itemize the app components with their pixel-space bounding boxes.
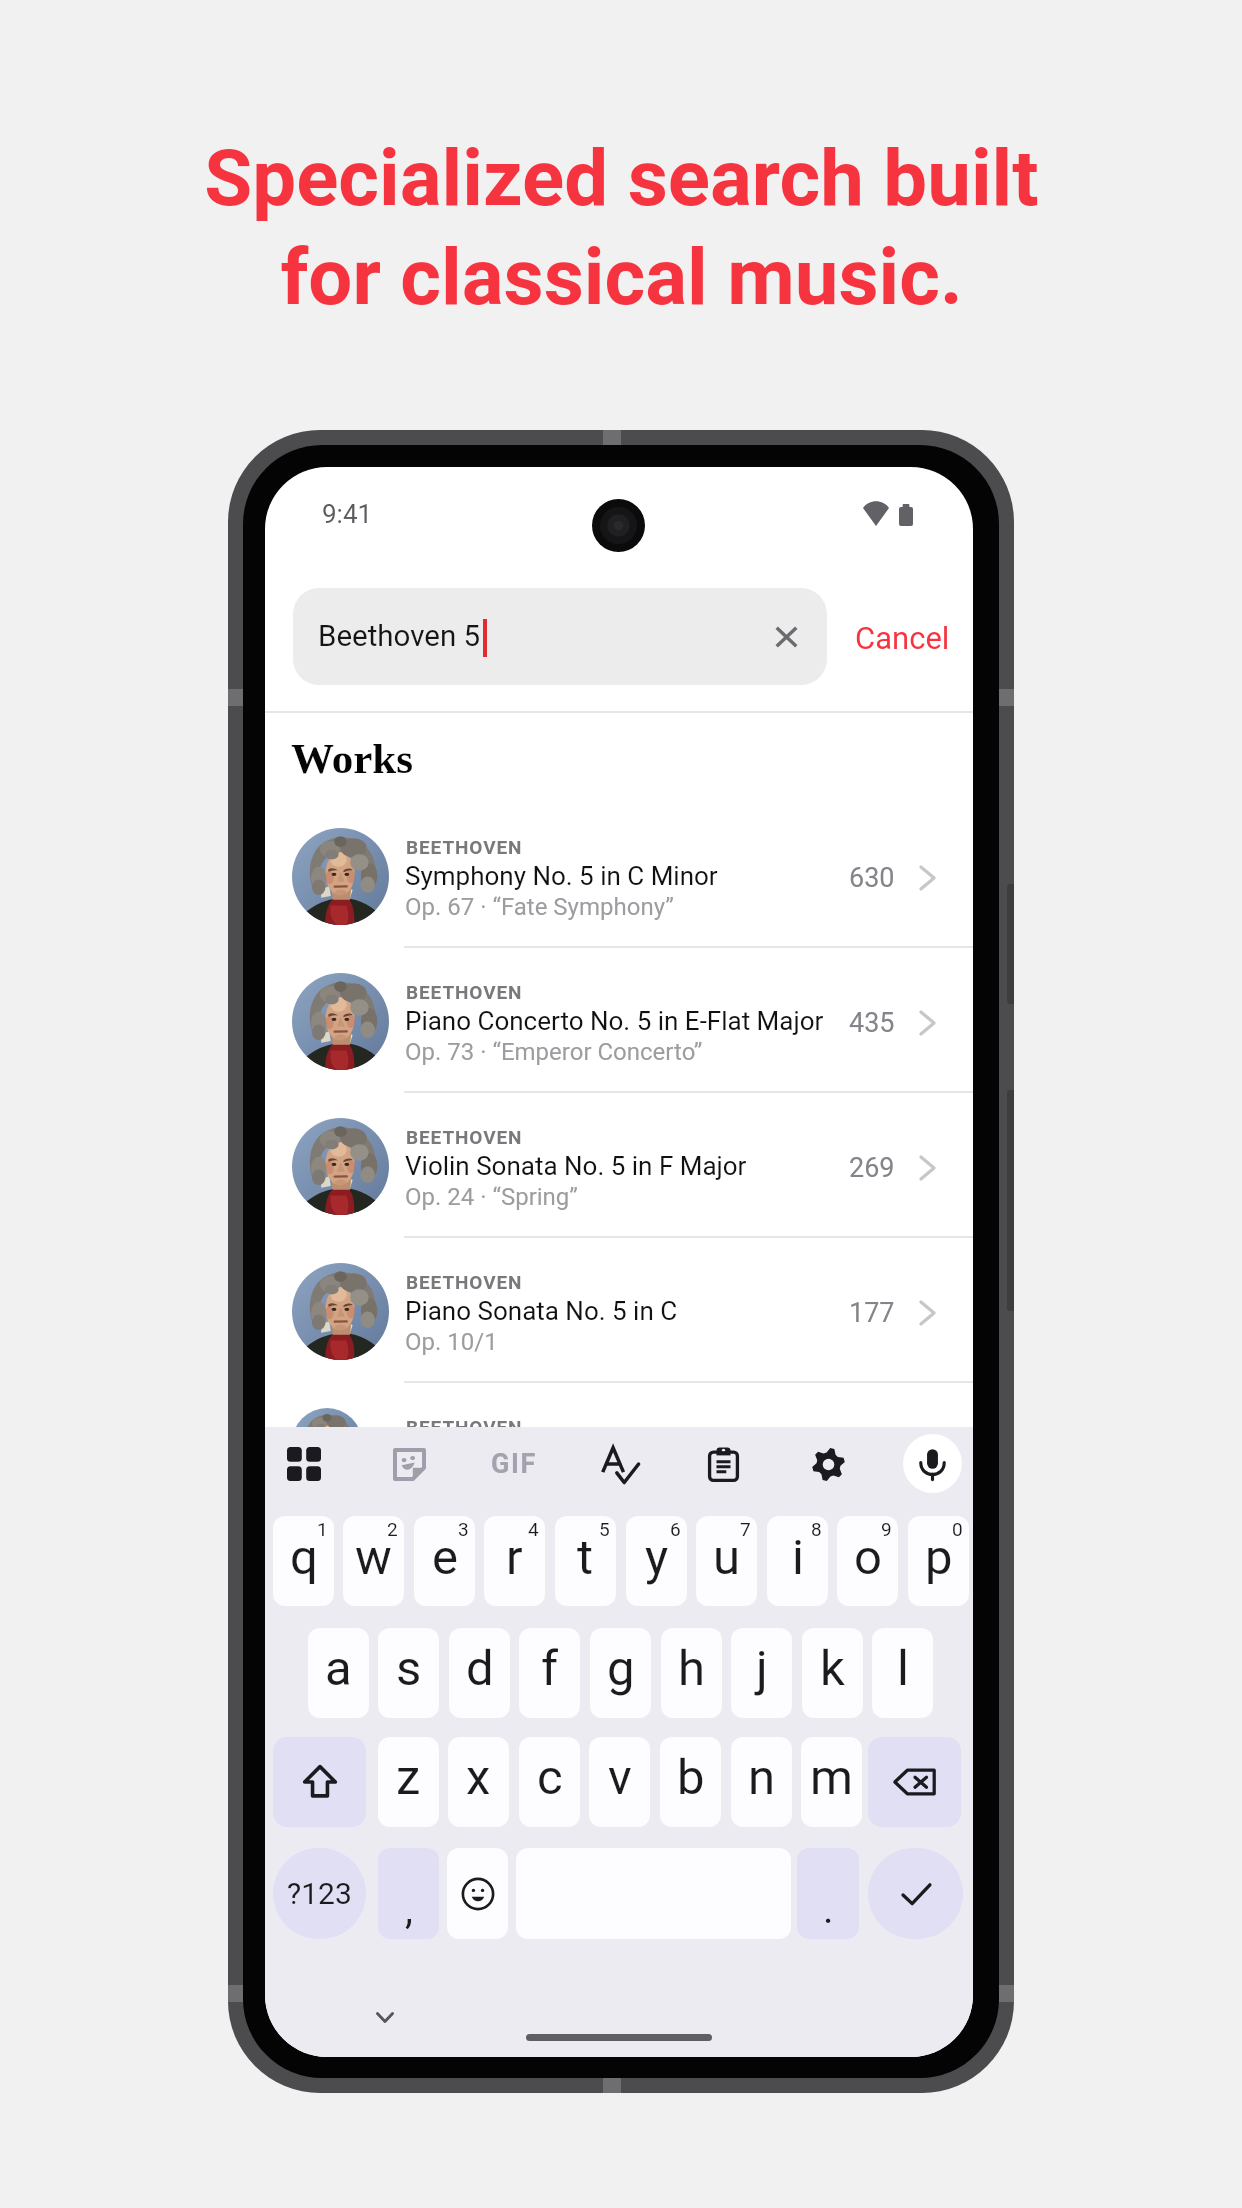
button[interactable]: BEETHOVEN	[265, 1093, 973, 1238]
button[interactable]: h	[661, 1628, 722, 1718]
button[interactable]: Cancel	[840, 589, 965, 686]
staticText: Op. 73 · “Emperor Concerto”	[405, 1038, 703, 1066]
button[interactable]: GIF	[479, 1440, 549, 1488]
button[interactable]: n	[731, 1737, 792, 1827]
button[interactable]: k	[802, 1628, 863, 1718]
button[interactable]: Shift	[273, 1737, 366, 1827]
button[interactable]: f	[519, 1628, 580, 1718]
button[interactable]: Text editing	[590, 1435, 650, 1495]
staticText: 7	[740, 1518, 751, 1540]
staticText: Symphony No. 5 in C Minor	[405, 861, 718, 891]
staticText: l	[897, 1640, 909, 1697]
button[interactable]: 6	[626, 1516, 687, 1606]
button[interactable]: j	[731, 1628, 792, 1718]
button[interactable]: b	[660, 1737, 721, 1827]
staticText: q	[290, 1529, 318, 1586]
staticText: Op. 67 · “Fate Symphony”	[405, 893, 674, 921]
staticText: Specialized search built for classical m…	[204, 133, 1039, 323]
button[interactable]: 3	[414, 1516, 475, 1606]
staticText: 269	[849, 1152, 895, 1184]
button[interactable]: ?123	[273, 1848, 366, 1939]
button[interactable]: Clipboard	[693, 1434, 753, 1494]
staticText: BEETHOVEN	[406, 1126, 523, 1148]
staticText: w	[355, 1529, 392, 1586]
staticText: p	[925, 1529, 953, 1586]
staticText: x	[466, 1749, 491, 1806]
button[interactable]: .	[797, 1848, 859, 1939]
button[interactable]: Emoji	[447, 1848, 508, 1939]
button[interactable]: m	[801, 1737, 862, 1827]
staticText: Works	[291, 735, 413, 783]
button[interactable]: x	[448, 1737, 509, 1827]
button[interactable]: 2	[343, 1516, 404, 1606]
staticText: ,	[405, 1886, 413, 1933]
button[interactable]: d	[449, 1628, 510, 1718]
button[interactable]: 8	[767, 1516, 828, 1606]
staticText: s	[396, 1640, 422, 1697]
staticText: z	[396, 1749, 421, 1806]
staticText: Piano Sonata No. 5 in C	[405, 1296, 678, 1326]
staticText: 630	[849, 862, 895, 894]
staticText: Op. 24 · “Spring”	[405, 1183, 578, 1211]
button[interactable]: BEETHOVEN	[265, 948, 973, 1093]
button[interactable]: 0	[908, 1516, 969, 1606]
button[interactable]: g	[590, 1628, 651, 1718]
staticText: t	[577, 1529, 594, 1586]
staticText: Op. 10/1	[405, 1328, 498, 1356]
staticText: n	[748, 1749, 776, 1806]
button[interactable]: ,	[378, 1848, 439, 1939]
button[interactable]: 5	[555, 1516, 616, 1606]
staticText: 2	[387, 1518, 398, 1540]
button[interactable]: BEETHOVEN	[265, 1238, 973, 1383]
button[interactable]: l	[872, 1628, 933, 1718]
staticText: d	[466, 1640, 494, 1697]
staticText: v	[608, 1749, 632, 1806]
staticText: u	[713, 1529, 741, 1586]
staticText: Cancel	[855, 620, 950, 656]
button[interactable]: v	[589, 1737, 650, 1827]
staticText: e	[432, 1529, 458, 1586]
button[interactable]: Settings	[798, 1434, 858, 1494]
button[interactable]: Keyboard options	[274, 1434, 334, 1494]
staticText: o	[854, 1529, 882, 1586]
staticText: .	[823, 1886, 834, 1933]
staticText: y	[645, 1529, 669, 1586]
staticText: c	[537, 1749, 563, 1806]
button[interactable]: Clear search	[755, 606, 817, 668]
button[interactable]: Backspace	[868, 1737, 961, 1827]
staticText: i	[792, 1529, 804, 1586]
staticText: 9	[881, 1518, 892, 1540]
staticText: r	[506, 1529, 523, 1586]
staticText: m	[810, 1749, 853, 1806]
button[interactable]: 4	[484, 1516, 545, 1606]
staticText: h	[678, 1640, 705, 1697]
button[interactable]: Voice input	[903, 1434, 962, 1493]
button[interactable]: Hide keyboard	[364, 2000, 406, 2034]
staticText: Violin Sonata No. 5 in F Major	[405, 1151, 747, 1181]
button[interactable]: 7	[696, 1516, 757, 1606]
staticText: 435	[849, 1007, 895, 1039]
button[interactable]: Beethoven 5	[293, 588, 827, 685]
button[interactable]: BEETHOVEN	[265, 803, 973, 948]
staticText: BEETHOVEN	[406, 1416, 523, 1438]
button[interactable]: 1	[273, 1516, 334, 1606]
staticText: 3	[458, 1518, 469, 1540]
staticText: ?123	[287, 1876, 352, 1911]
button[interactable]: Stickers	[379, 1434, 439, 1494]
staticText: Piano Concerto No. 5 in E-Flat Major	[405, 1006, 824, 1036]
button[interactable]: z	[378, 1737, 439, 1827]
button[interactable]: BEETHOVEN	[265, 1383, 973, 1453]
staticText: 0	[952, 1518, 963, 1540]
staticText: 9:41	[322, 499, 373, 529]
button[interactable]: Enter	[868, 1848, 963, 1939]
staticText: GIF	[491, 1448, 537, 1480]
button[interactable]: 9	[837, 1516, 898, 1606]
staticText: b	[677, 1749, 705, 1806]
staticText: 1	[317, 1518, 328, 1540]
staticText: 5	[599, 1518, 610, 1540]
button[interactable]: a	[308, 1628, 369, 1718]
staticText: BEETHOVEN	[406, 1271, 523, 1293]
button[interactable]: c	[519, 1737, 580, 1827]
button[interactable]: s	[378, 1628, 439, 1718]
